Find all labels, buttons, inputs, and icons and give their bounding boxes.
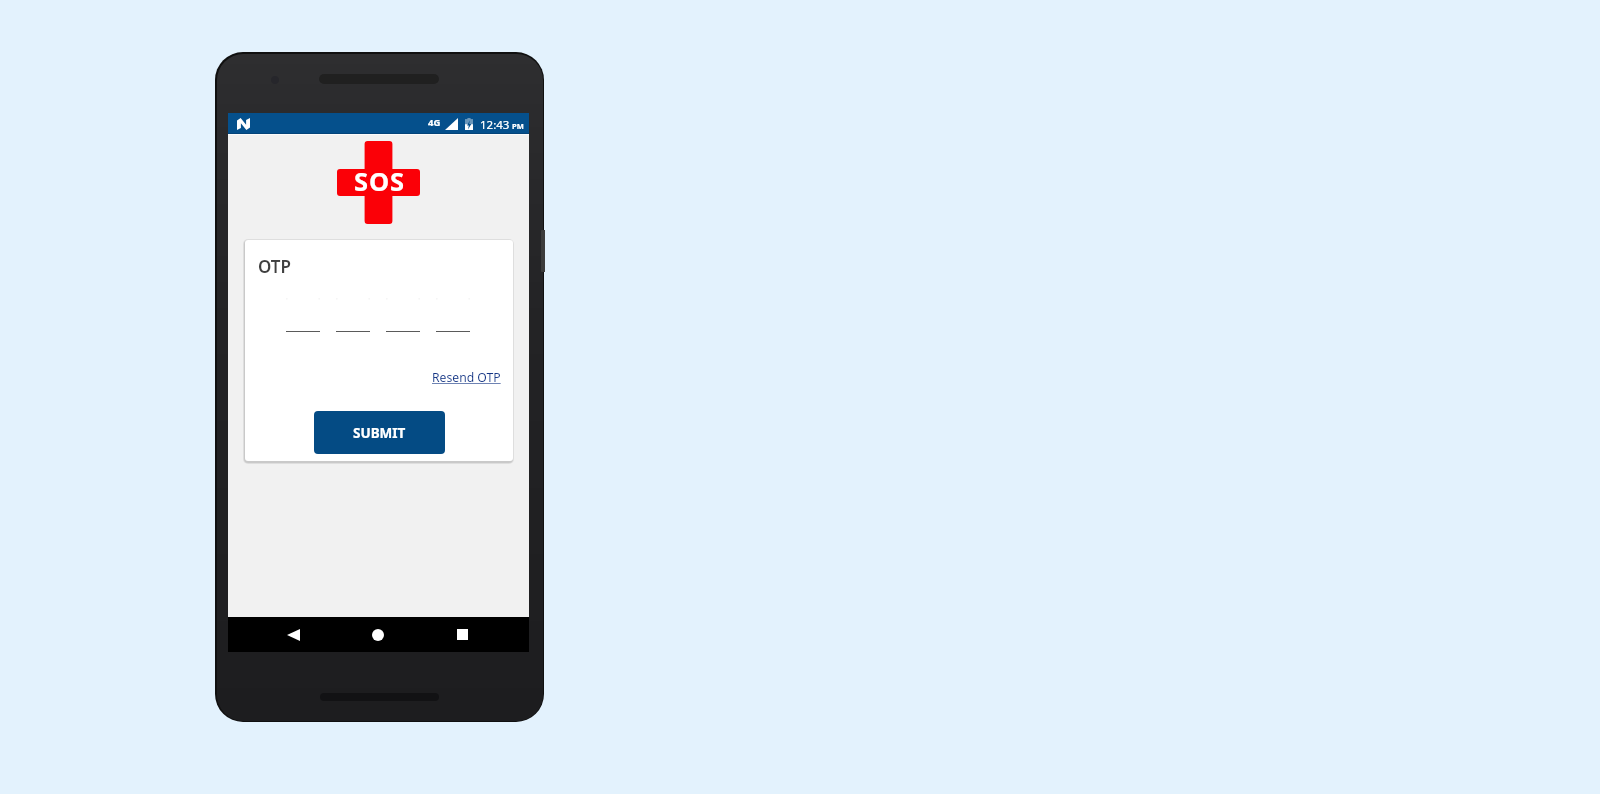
staticText: SUBMIT <box>353 424 406 442</box>
staticText: Resend OTP <box>432 369 501 386</box>
button[interactable]: OTP digit 1 <box>286 312 320 332</box>
button[interactable]: OTP digit 3 <box>386 312 420 332</box>
button[interactable]: Back <box>273 617 313 652</box>
staticText: 4G <box>428 116 441 129</box>
staticText: OTP <box>258 255 291 278</box>
button[interactable]: OTP digit 2 <box>336 312 370 332</box>
button[interactable]: Resend OTP <box>391 368 501 386</box>
button[interactable]: Home <box>358 617 398 652</box>
button[interactable]: SUBMIT <box>314 411 445 454</box>
button[interactable]: OTP digit 4 <box>436 312 470 332</box>
button[interactable]: Recent apps <box>442 617 482 652</box>
staticText: PM <box>512 121 524 131</box>
staticText: SOS <box>354 164 405 199</box>
staticText: 12:43 <box>480 117 510 133</box>
button[interactable]: SOS emergency <box>337 141 420 224</box>
